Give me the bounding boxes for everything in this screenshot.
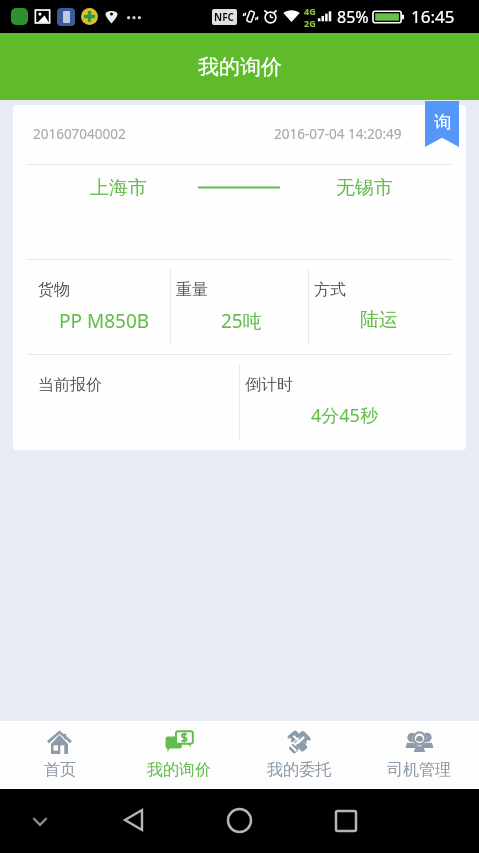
staticText: 我的询价	[198, 54, 282, 80]
staticText: 我的询价	[147, 760, 211, 780]
staticText: 25吨	[221, 308, 262, 334]
staticText: 85%	[337, 6, 369, 28]
staticText: 司机管理	[387, 760, 451, 780]
button[interactable]: 201607040002	[13, 105, 466, 450]
staticText: 当前报价	[38, 375, 102, 395]
staticText: 询	[434, 112, 451, 133]
button[interactable]: 首页	[0, 721, 119, 789]
staticText: 上海市	[90, 176, 147, 200]
staticText: 方式	[314, 280, 346, 300]
staticText: 16:45	[411, 5, 455, 28]
staticText: 倒计时	[245, 375, 293, 395]
button[interactable]: 司机管理	[359, 721, 479, 789]
button[interactable]: Home	[226, 807, 253, 834]
staticText: 重量	[176, 280, 208, 300]
staticText: NFC	[214, 10, 235, 24]
button[interactable]: 我的委托	[239, 721, 359, 789]
staticText: 陆运	[360, 308, 398, 332]
button[interactable]: 我的询价	[119, 721, 239, 789]
button[interactable]: Hide keyboard	[32, 812, 48, 830]
staticText: 4分45秒	[311, 403, 378, 428]
button[interactable]: Back	[120, 807, 146, 833]
button[interactable]: Recents	[333, 808, 359, 834]
staticText: 2016-07-04 14:20:49	[274, 125, 402, 143]
staticText: 201607040002	[33, 125, 126, 143]
staticText: 货物	[38, 280, 70, 300]
staticText: 4G	[304, 5, 316, 17]
staticText: PP M850B	[59, 308, 150, 334]
staticText: 无锡市	[336, 176, 393, 200]
staticText: 我的委托	[267, 760, 331, 780]
staticText: 首页	[44, 760, 76, 780]
staticText: 2G	[304, 17, 316, 29]
